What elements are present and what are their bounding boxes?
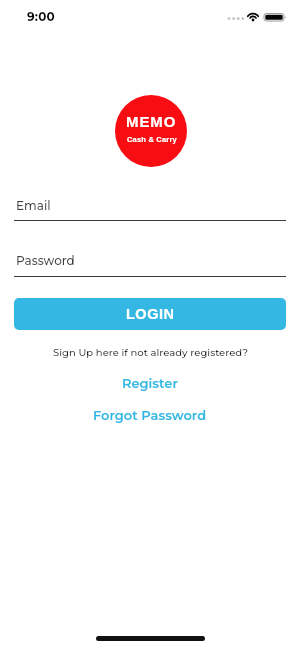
staticText: Register (122, 375, 178, 391)
button[interactable]: Password (16, 253, 300, 268)
button[interactable]: Email (16, 198, 300, 213)
staticText: MEMO (126, 113, 177, 130)
staticText: Email (16, 198, 51, 213)
staticText: 9:00 (27, 9, 55, 24)
button[interactable]: Register (122, 375, 178, 391)
staticText: Forgot Password (93, 407, 207, 423)
button[interactable]: Forgot Password (93, 407, 207, 423)
staticText: LOGIN (126, 306, 175, 322)
staticText: Sign Up here if not already registered? (53, 346, 248, 358)
button[interactable]: LOGIN (14, 298, 286, 330)
staticText: Cash & Carry (127, 135, 177, 143)
staticText: Password (16, 253, 75, 268)
